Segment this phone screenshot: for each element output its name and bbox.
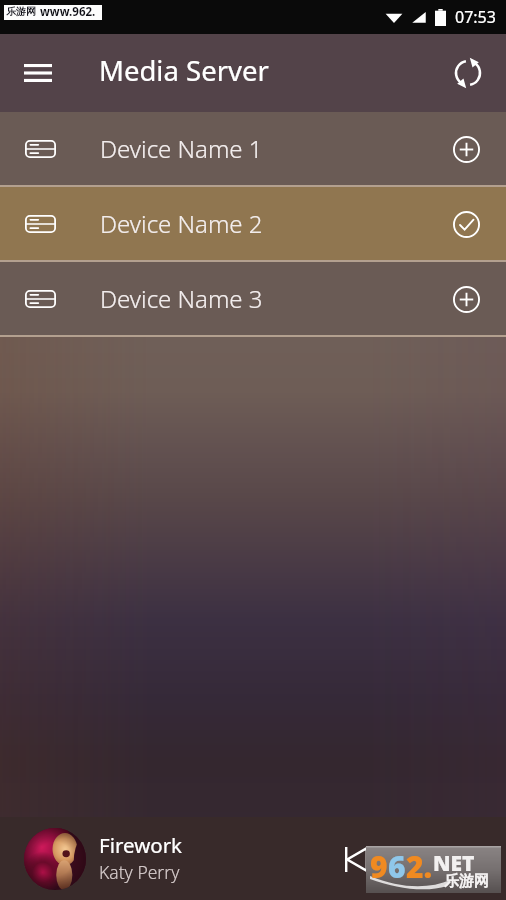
button[interactable]: Device Name 3 bbox=[0, 262, 506, 335]
button[interactable]: Connect bbox=[443, 276, 489, 322]
staticText: Firework bbox=[99, 831, 183, 859]
staticText: 9 bbox=[370, 846, 388, 887]
button[interactable]: Connect bbox=[443, 126, 489, 172]
staticText: NET bbox=[433, 849, 475, 878]
staticText: 6 bbox=[388, 846, 406, 887]
staticText: Device Name 2 bbox=[100, 207, 263, 240]
button[interactable]: Connected bbox=[443, 201, 489, 247]
button[interactable]: Device Name 2 bbox=[0, 187, 506, 260]
staticText: 乐游网 bbox=[444, 872, 489, 891]
button[interactable]: Album art bbox=[24, 828, 86, 890]
staticText: 乐游网 bbox=[6, 5, 36, 18]
button[interactable]: Device Name 1 bbox=[0, 112, 506, 185]
button[interactable]: Open navigation menu bbox=[12, 47, 64, 99]
staticText: 07:53 bbox=[455, 6, 496, 28]
button[interactable]: Previous track bbox=[328, 831, 384, 887]
button[interactable]: Pause bbox=[384, 831, 440, 887]
staticText: 2. bbox=[406, 846, 433, 887]
staticText: Device Name 1 bbox=[100, 132, 263, 165]
button[interactable]: Refresh bbox=[442, 47, 494, 99]
staticText: Device Name 3 bbox=[100, 282, 263, 315]
staticText: www.962.net bbox=[40, 4, 102, 19]
staticText: Katy Perry bbox=[99, 860, 180, 884]
button[interactable]: Next track bbox=[440, 831, 496, 887]
staticText: Media Server bbox=[99, 52, 269, 89]
